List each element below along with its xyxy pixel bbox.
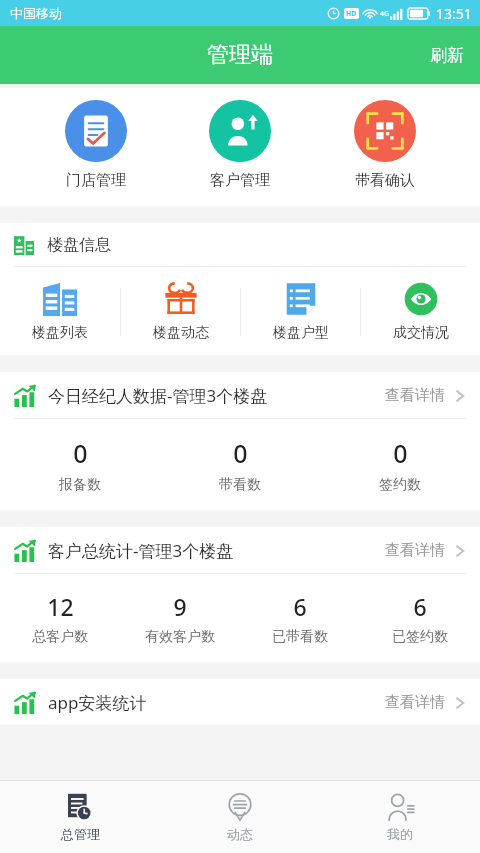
staticText: 0 bbox=[393, 436, 408, 470]
staticText: 楼盘信息 bbox=[47, 235, 111, 255]
staticText: 楼盘动态 bbox=[153, 324, 209, 342]
button[interactable]: app安装统计 bbox=[0, 679, 480, 725]
button[interactable]: 带看确认 bbox=[336, 98, 434, 192]
staticText: 4G bbox=[380, 9, 390, 19]
button[interactable]: 0 bbox=[0, 436, 160, 494]
button[interactable]: 12 bbox=[0, 591, 120, 646]
button[interactable]: 我的 bbox=[320, 781, 480, 853]
button[interactable]: 楼盘动态 bbox=[121, 280, 240, 344]
staticText: 查看详情 bbox=[385, 541, 445, 560]
button[interactable]: 总管理 bbox=[0, 781, 160, 853]
staticText: 0 bbox=[233, 436, 248, 470]
button[interactable]: 0 bbox=[160, 436, 320, 494]
staticText: 动态 bbox=[227, 826, 253, 842]
staticText: app安装统计 bbox=[48, 691, 147, 714]
button[interactable]: 楼盘列表 bbox=[0, 280, 120, 344]
staticText: 报备数 bbox=[59, 476, 101, 494]
button[interactable]: 楼盘户型 bbox=[241, 280, 360, 344]
button[interactable]: 刷新 bbox=[414, 33, 480, 78]
staticText: 0 bbox=[73, 436, 88, 470]
button[interactable]: 动态 bbox=[160, 781, 320, 853]
staticText: 13:51 bbox=[436, 4, 472, 23]
staticText: 总管理 bbox=[61, 826, 100, 842]
staticText: 总客户数 bbox=[32, 628, 88, 646]
staticText: 6 bbox=[413, 591, 427, 622]
staticText: 查看详情 bbox=[385, 386, 445, 405]
button[interactable]: 门店管理 bbox=[47, 98, 145, 192]
staticText: 9 bbox=[173, 591, 187, 622]
staticText: 我的 bbox=[387, 826, 413, 842]
button[interactable]: 9 bbox=[120, 591, 240, 646]
staticText: 楼盘户型 bbox=[273, 324, 329, 342]
staticText: 已带看数 bbox=[272, 628, 328, 646]
staticText: 中国移动 bbox=[10, 5, 62, 21]
staticText: 成交情况 bbox=[393, 324, 449, 342]
staticText: HD bbox=[346, 9, 357, 19]
staticText: 有效客户数 bbox=[145, 628, 215, 646]
staticText: 12 bbox=[47, 591, 74, 622]
button[interactable]: 客户管理 bbox=[191, 98, 289, 192]
button[interactable]: 6 bbox=[360, 591, 480, 646]
staticText: 门店管理 bbox=[66, 171, 126, 190]
staticText: 签约数 bbox=[379, 476, 421, 494]
staticText: 今日经纪人数据-管理3个楼盘 bbox=[48, 384, 268, 407]
staticText: 查看详情 bbox=[385, 693, 445, 712]
button[interactable]: 今日经纪人数据-管理3个楼盘 bbox=[0, 372, 480, 418]
staticText: 带看数 bbox=[219, 476, 261, 494]
staticText: 楼盘列表 bbox=[32, 324, 88, 342]
staticText: 客户总统计-管理3个楼盘 bbox=[48, 539, 234, 562]
button[interactable]: 6 bbox=[240, 591, 360, 646]
staticText: 带看确认 bbox=[355, 171, 415, 190]
staticText: 6 bbox=[293, 591, 307, 622]
staticText: 管理端 bbox=[207, 41, 273, 69]
button[interactable]: 0 bbox=[320, 436, 480, 494]
staticText: 已签约数 bbox=[392, 628, 448, 646]
button[interactable]: 成交情况 bbox=[361, 280, 480, 344]
staticText: 刷新 bbox=[430, 45, 464, 66]
staticText: 客户管理 bbox=[210, 171, 270, 190]
button[interactable]: 客户总统计-管理3个楼盘 bbox=[0, 527, 480, 573]
